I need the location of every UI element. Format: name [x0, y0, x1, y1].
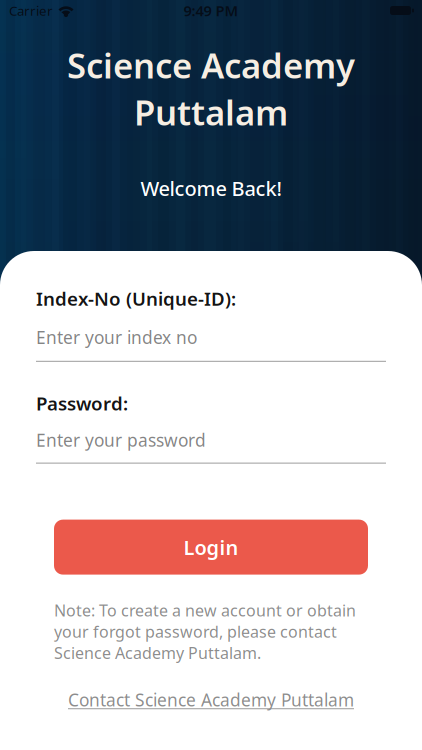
staticText: 9:49 PM [183, 1, 238, 20]
button[interactable]: Contact Science Academy Puttalam [36, 688, 386, 711]
staticText: Enter your index no [36, 326, 197, 349]
staticText: Password: [36, 391, 128, 416]
staticText: Enter your password [36, 429, 206, 452]
staticText: Welcome Back! [140, 175, 281, 202]
button[interactable]: Login [54, 520, 368, 575]
staticText: Puttalam [134, 89, 288, 135]
staticText: Carrier [9, 2, 53, 19]
staticText: Note: To create a new account or obtain … [54, 600, 356, 663]
staticText: Contact Science Academy Puttalam [68, 688, 354, 711]
staticText: Login [183, 534, 238, 560]
staticText: Science Academy [67, 42, 355, 88]
staticText: Index-No (Unique-ID): [36, 286, 236, 311]
